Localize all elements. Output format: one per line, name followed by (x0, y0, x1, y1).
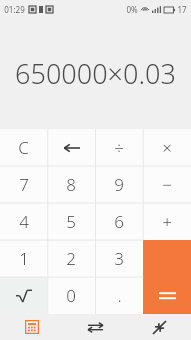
staticText: × (162, 136, 172, 159)
button[interactable]: Converter (63, 314, 127, 340)
staticText: 9 (114, 173, 124, 196)
staticText: 4 (19, 210, 29, 233)
staticText: 1 (19, 247, 29, 270)
staticText: ÷ (114, 136, 124, 159)
button[interactable]: C (0, 129, 47, 166)
staticText: 650000×0.03 (15, 55, 176, 92)
button[interactable]: Backspace (47, 129, 95, 166)
button[interactable]: 4 (0, 203, 47, 240)
staticText: 8 (66, 173, 76, 196)
staticText: 01:29 (4, 4, 25, 15)
staticText: 7 (19, 173, 29, 196)
staticText: 3 (114, 247, 124, 270)
staticText: 6 (114, 210, 124, 233)
button[interactable]: ÷ (95, 129, 143, 166)
button[interactable]: Square root (0, 277, 47, 314)
button[interactable]: Collapse (127, 314, 191, 340)
staticText: 5 (66, 210, 76, 233)
staticText: 17 (177, 4, 187, 15)
staticText: 2 (66, 247, 76, 270)
button[interactable]: 5 (47, 203, 95, 240)
button[interactable]: 1 (0, 240, 47, 277)
staticText: − (162, 173, 172, 196)
staticText: 0% (126, 4, 138, 15)
staticText: C (18, 136, 29, 159)
staticText: . (117, 284, 122, 307)
button[interactable]: 6 (95, 203, 143, 240)
button[interactable]: . (95, 277, 143, 314)
button[interactable]: × (143, 129, 191, 166)
button[interactable]: 0 (47, 277, 95, 314)
button[interactable]: Calculator (0, 314, 63, 340)
staticText: 0 (66, 284, 76, 307)
button[interactable]: 3 (95, 240, 143, 277)
button[interactable]: + (143, 203, 191, 240)
button[interactable]: 9 (95, 166, 143, 203)
button[interactable]: 8 (47, 166, 95, 203)
button[interactable]: Equals (143, 277, 191, 314)
button[interactable]: 7 (0, 166, 47, 203)
button[interactable]: − (143, 166, 191, 203)
staticText: + (162, 210, 172, 233)
button[interactable]: 2 (47, 240, 95, 277)
